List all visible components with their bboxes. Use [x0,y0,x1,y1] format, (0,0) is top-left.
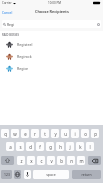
staticText: e [24,131,27,137]
button[interactable]: z [17,156,25,165]
staticText: p [94,131,97,137]
staticText: j [69,144,71,150]
button[interactable]: Registeel [0,38,103,50]
button[interactable]: x [27,156,35,165]
button[interactable]: return [72,170,101,179]
button[interactable]: v [47,156,55,165]
staticText: v [50,158,53,164]
button[interactable]: r [31,129,39,138]
staticText: t [44,131,46,137]
staticText: w [13,131,17,137]
button[interactable]: w [11,129,19,138]
button[interactable]: u [61,129,69,138]
staticText: Regice [17,66,29,71]
staticText: q [4,131,7,137]
staticText: 123 [4,172,10,177]
button[interactable]: s [16,142,24,151]
staticText: Choose Recipients [35,9,69,14]
staticText: space [46,172,56,177]
staticText: Cancel [2,10,13,14]
staticText: z [20,158,23,164]
staticText: Regi [7,22,14,27]
button[interactable]: g [46,142,54,151]
staticText: f [39,144,41,150]
button[interactable]: p [91,129,99,138]
staticText: Carrier [2,1,12,5]
staticText: o [84,131,87,137]
staticText: l [89,144,91,150]
button[interactable]: j [66,142,74,151]
staticText: h [59,144,62,150]
staticText: Regirock [17,54,32,59]
button[interactable]: h [56,142,64,151]
button[interactable]: Cancel [0,8,15,16]
button[interactable]: Backspace [88,156,101,165]
staticText: d [29,144,32,150]
staticText: 10:00 PM [48,1,61,5]
staticText: Registeel [17,42,33,47]
button[interactable]: c [37,156,45,165]
button[interactable]: l [86,142,94,151]
button[interactable]: Change keyboard [14,170,21,179]
button[interactable]: Regirock [0,50,103,62]
button[interactable]: Regice [0,62,103,74]
button[interactable]: b [57,156,65,165]
staticText: x [30,158,33,164]
button[interactable]: t [41,129,49,138]
button[interactable]: e [21,129,29,138]
button[interactable]: Dictate [24,170,31,179]
staticText: b [60,158,63,164]
button[interactable]: i [71,129,79,138]
button[interactable]: 123 [1,170,12,179]
button[interactable]: n [67,156,75,165]
button[interactable]: Regi [2,20,101,28]
button[interactable]: q [1,129,9,138]
button[interactable]: space [33,170,69,179]
staticText: k [79,144,82,150]
button[interactable]: Shift [1,156,14,165]
staticText: return [81,172,92,177]
button[interactable]: o [81,129,89,138]
staticText: a [9,144,12,150]
staticText: g [49,144,52,150]
staticText: c [40,158,43,164]
button[interactable]: k [76,142,84,151]
staticText: u [64,131,67,137]
button[interactable]: Clear search [97,23,100,26]
staticText: y [54,131,57,137]
staticText: m [79,158,84,164]
staticText: s [19,144,22,150]
staticText: RAID BOSSES [2,33,20,37]
staticText: i [74,131,76,137]
button[interactable]: f [36,142,44,151]
button[interactable]: m [77,156,85,165]
button[interactable]: d [26,142,34,151]
button[interactable]: y [51,129,59,138]
staticText: n [70,158,73,164]
button[interactable]: a [6,142,14,151]
staticText: r [34,131,36,137]
